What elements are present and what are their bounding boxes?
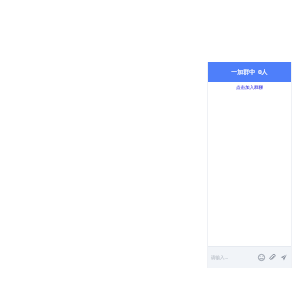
- staticText: 请输入...: [211, 254, 229, 260]
- staticText: 点击加入群聊: [236, 85, 263, 91]
- button[interactable]: Attach: [267, 252, 277, 262]
- staticText: 一加群中 0人: [231, 68, 268, 76]
- button[interactable]: Send: [278, 252, 288, 262]
- button[interactable]: 请输入...: [211, 246, 256, 268]
- button[interactable]: 点击加入群聊: [236, 85, 263, 91]
- button[interactable]: 一加群中 0人: [207, 62, 292, 82]
- button[interactable]: Emoji: [256, 252, 266, 262]
